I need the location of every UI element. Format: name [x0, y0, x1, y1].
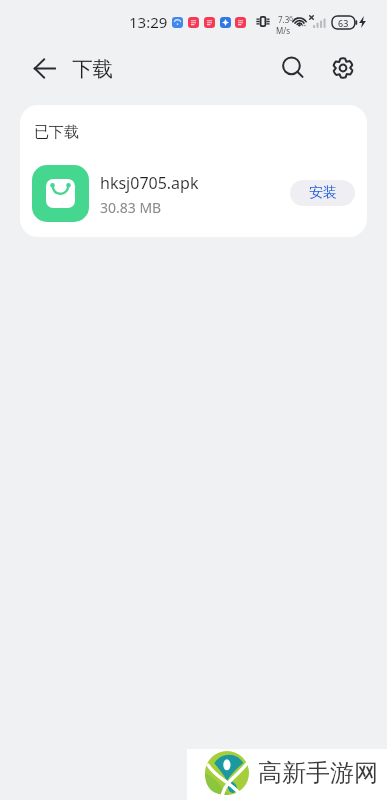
- staticText: 7.3: [278, 14, 290, 25]
- staticText: 6: [289, 14, 294, 24]
- staticText: 13:29: [129, 12, 168, 32]
- staticText: 安装: [309, 184, 337, 202]
- button[interactable]: Settings: [323, 48, 363, 88]
- staticText: 30.83 MB: [100, 198, 162, 217]
- staticText: 下载: [72, 56, 113, 82]
- staticText: 高新手游网: [258, 758, 378, 788]
- button[interactable]: Back: [24, 48, 64, 88]
- button[interactable]: Search: [273, 48, 313, 88]
- staticText: 已下载: [34, 123, 79, 142]
- staticText: 63: [338, 17, 349, 29]
- button[interactable]: 安装: [290, 180, 355, 206]
- staticText: hksj0705.apk: [100, 172, 199, 194]
- staticText: M/s: [276, 25, 291, 36]
